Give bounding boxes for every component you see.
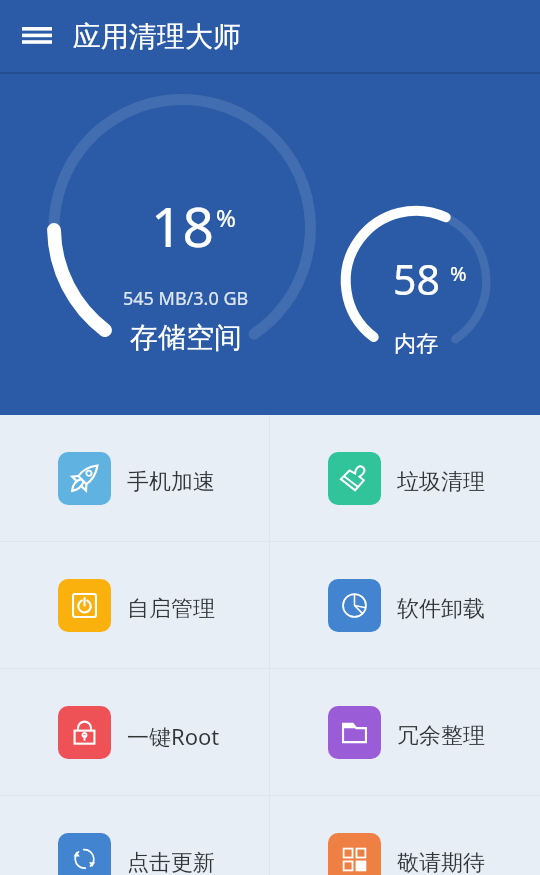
button[interactable]: 自启管理 bbox=[0, 542, 269, 668]
staticText: 内存 bbox=[394, 330, 438, 358]
staticText: 手机加速 bbox=[127, 468, 215, 496]
staticText: 18 bbox=[151, 188, 214, 263]
button[interactable]: 冗余整理 bbox=[270, 669, 540, 795]
staticText: 敬请期待 bbox=[397, 849, 485, 875]
staticText: 冗余整理 bbox=[397, 722, 485, 750]
staticText: 应用清理大师 bbox=[73, 19, 241, 54]
staticText: 自启管理 bbox=[127, 595, 215, 623]
staticText: 58 bbox=[393, 251, 440, 307]
button[interactable]: Open navigation menu bbox=[8, 7, 66, 65]
staticText: 一键Root bbox=[127, 721, 220, 751]
button[interactable]: 敬请期待 bbox=[270, 796, 540, 875]
staticText: 软件卸载 bbox=[397, 595, 485, 623]
button[interactable]: 一键Root bbox=[0, 669, 269, 795]
staticText: 垃圾清理 bbox=[397, 468, 485, 496]
staticText: 点击更新 bbox=[127, 849, 215, 875]
button[interactable]: 垃圾清理 bbox=[270, 415, 540, 541]
staticText: % bbox=[216, 201, 236, 234]
button[interactable]: 存储空间 18%, 545 MB/3.0 GB bbox=[54, 100, 311, 357]
button[interactable]: 软件卸载 bbox=[270, 542, 540, 668]
button[interactable]: 内存 58% bbox=[346, 211, 487, 352]
staticText: 545 MB/3.0 GB bbox=[123, 286, 249, 311]
staticText: % bbox=[450, 260, 467, 287]
staticText: 存储空间 bbox=[130, 320, 242, 355]
button[interactable]: 点击更新 bbox=[0, 796, 269, 875]
button[interactable]: 手机加速 bbox=[0, 415, 269, 541]
